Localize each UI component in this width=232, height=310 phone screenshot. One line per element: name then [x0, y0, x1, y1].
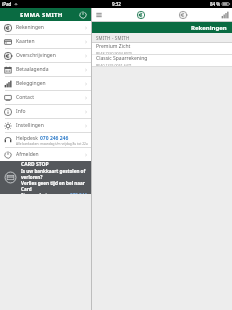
staticText: 070 246 246: [40, 135, 69, 142]
button[interactable]: Overschrijvingen: [0, 49, 91, 62]
button[interactable]: Info: [0, 105, 91, 118]
button[interactable]: Helpdesk: [0, 133, 91, 147]
button[interactable]: Premium Zicht: [92, 43, 232, 54]
button[interactable]: Afmelden: [77, 9, 88, 20]
staticText: Rekeningen: [16, 24, 44, 31]
button[interactable]: Beleggingen: [218, 8, 231, 21]
button[interactable]: Kaarten: [0, 35, 91, 48]
staticText: Is uw bankkaart gestolen of verloren?: [21, 168, 87, 180]
staticText: Afmelden: [16, 151, 39, 158]
staticText: Alle bankzaken: maandag t/m vrijdag 8u t…: [16, 142, 88, 146]
button[interactable]: Classic Spaarrekening: [92, 55, 232, 66]
staticText: CARD STOP: [21, 161, 49, 168]
staticText: EMMA SMITH: [20, 11, 63, 19]
button[interactable]: Beleggingen: [0, 77, 91, 90]
button[interactable]: Rekeningen: [134, 8, 147, 21]
staticText: Rekeningen: [191, 24, 227, 32]
staticText: BE40 1325 0051 6471: [96, 63, 132, 66]
button[interactable]: CARD STOP: [0, 161, 91, 194]
staticText: BE48 7330 9004 8070: [96, 51, 132, 54]
staticText: Beleggingen: [16, 80, 46, 87]
staticText: Betaalagenda: [16, 66, 49, 73]
staticText: 84 %: [210, 1, 221, 7]
staticText: 070 344 344: [70, 192, 87, 194]
staticText: Premium Zicht: [96, 43, 131, 50]
staticText: Stop op het nummer: [21, 192, 70, 194]
button[interactable]: Instellingen: [0, 119, 91, 132]
staticText: iPad: [2, 1, 12, 7]
button[interactable]: Menu: [92, 8, 105, 21]
staticText: SMITH - SMITH: [96, 35, 130, 41]
staticText: Helpdesk: [16, 135, 40, 142]
staticText: Overschrijvingen: [16, 52, 56, 59]
button[interactable]: Afmelden: [0, 148, 91, 161]
staticText: Verlies geen tijd en bel naar Card: [21, 180, 87, 192]
staticText: 9:32: [112, 1, 121, 7]
staticText: Info: [16, 108, 26, 115]
staticText: Contact: [16, 94, 35, 101]
button[interactable]: Betaalagenda: [0, 63, 91, 76]
staticText: Kaarten: [16, 38, 35, 45]
staticText: Classic Spaarrekening: [96, 55, 148, 62]
staticText: Instellingen: [16, 122, 44, 129]
button[interactable]: Overschrijvingen: [176, 8, 189, 21]
button[interactable]: Rekeningen: [0, 21, 91, 34]
button[interactable]: Contact: [0, 91, 91, 104]
